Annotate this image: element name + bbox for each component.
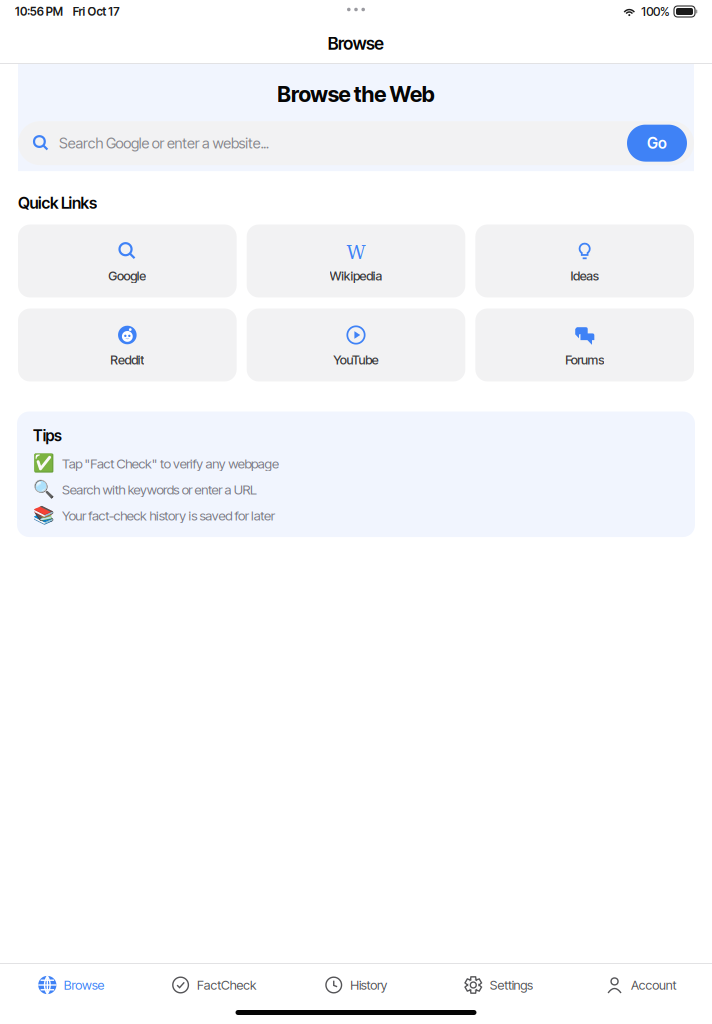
button[interactable]: W (247, 224, 465, 297)
staticText: Search Google or enter a website... (59, 134, 269, 152)
staticText: Search with keywords or enter a URL (62, 481, 257, 498)
staticText: Tips (33, 426, 62, 445)
staticText: History (350, 977, 388, 993)
button[interactable]: Go (627, 125, 687, 162)
staticText: W (346, 242, 365, 263)
staticText: Ideas (570, 268, 599, 283)
staticText: Account (631, 977, 677, 993)
staticText: Settings (490, 977, 533, 993)
staticText: 🔍 (33, 479, 55, 500)
button[interactable]: Settings (427, 969, 570, 1001)
staticText: ✅ (33, 453, 55, 474)
staticText: Forums (565, 352, 604, 367)
button[interactable]: Forums (475, 308, 694, 381)
staticText: YouTube (333, 352, 379, 367)
staticText: Browse the Web (277, 81, 435, 107)
button[interactable]: Google (18, 224, 237, 297)
staticText: Go (647, 134, 667, 152)
button[interactable]: Reddit (18, 308, 237, 381)
staticText: Google (108, 268, 146, 283)
button[interactable]: Ideas (475, 224, 694, 297)
staticText: Your fact-check history is saved for lat… (62, 507, 275, 524)
button[interactable]: YouTube (247, 308, 465, 381)
staticText: Reddit (110, 352, 144, 367)
staticText: Tap "Fact Check" to verify any webpage (62, 455, 279, 472)
button[interactable]: FactCheck (142, 969, 285, 1001)
staticText: FactCheck (197, 977, 256, 993)
staticText: 100% (641, 4, 670, 19)
staticText: Browse (328, 33, 384, 54)
button[interactable]: History (285, 969, 427, 1001)
button[interactable]: Browse (0, 969, 142, 1001)
staticText: 📚 (33, 505, 55, 526)
staticText: Quick Links (18, 193, 97, 212)
staticText: Browse (64, 977, 105, 993)
staticText: 10:56 PM (15, 4, 63, 19)
staticText: Fri Oct 17 (73, 4, 119, 19)
button[interactable]: Account (570, 969, 712, 1001)
staticText: Wikipedia (330, 268, 382, 283)
